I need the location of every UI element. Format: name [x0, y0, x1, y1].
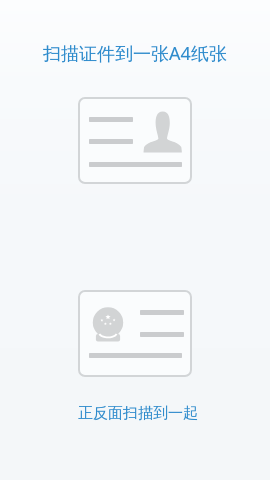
staticText: 扫描证件到一张A4纸张	[0, 41, 270, 66]
button[interactable]: 身份证正面	[78, 97, 192, 184]
button[interactable]: 身份证反面	[78, 290, 192, 377]
staticText: 正反面扫描到一起	[3, 404, 270, 423]
